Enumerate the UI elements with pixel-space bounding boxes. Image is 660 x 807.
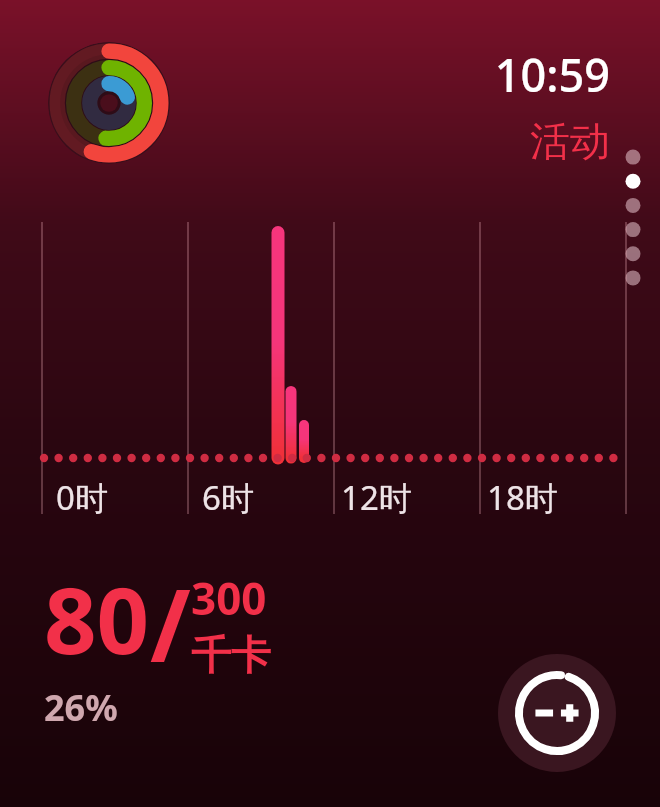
staticText: 6时: [202, 475, 254, 520]
staticText: 18时: [487, 475, 558, 520]
staticText: /: [150, 556, 191, 689]
staticText: 300: [191, 568, 267, 628]
staticText: 活动: [410, 116, 610, 807]
staticText: 80: [44, 556, 150, 681]
button[interactable]: Activity rings: [48, 42, 170, 164]
staticText: 26%: [44, 683, 118, 732]
staticText: 千卡: [191, 630, 271, 680]
button[interactable]: Adjust goal: [498, 654, 616, 772]
staticText: 10:59: [410, 44, 610, 807]
staticText: 0时: [56, 475, 108, 520]
staticText: 12时: [341, 475, 412, 520]
